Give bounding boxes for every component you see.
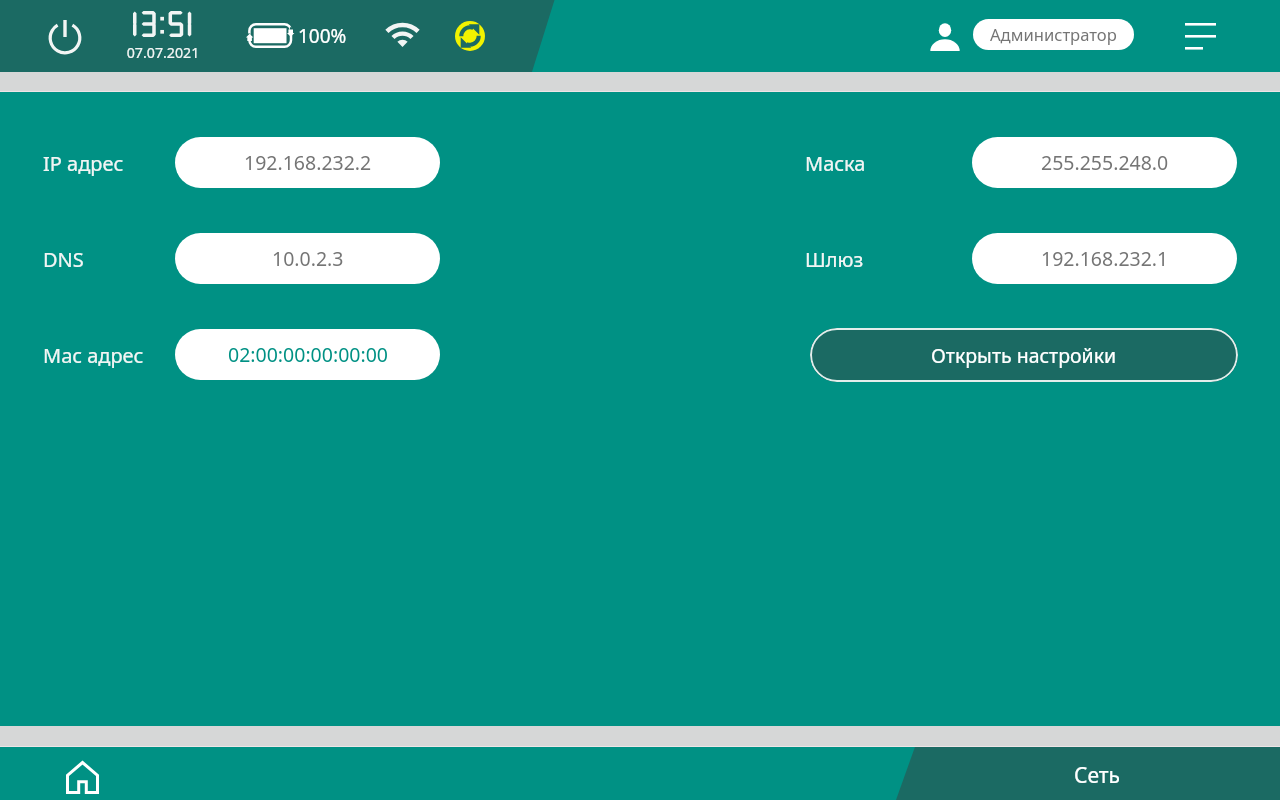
staticText: 10.0.2.3	[272, 245, 344, 272]
staticText: Шлюз	[805, 246, 864, 273]
staticText: 02:00:00:00:00:00	[228, 341, 388, 368]
button[interactable]: Account: Администратор	[924, 12, 1140, 60]
staticText: 192.168.232.2	[244, 149, 372, 176]
button[interactable]: 192.168.232.1	[972, 233, 1237, 284]
staticText: Mac адрес	[43, 342, 144, 369]
button[interactable]: Home	[54, 753, 111, 800]
staticText: 07.07.2021	[124, 43, 202, 62]
staticText: 100%	[298, 23, 347, 49]
button[interactable]: Сеть	[915, 747, 1280, 800]
staticText: Маска	[805, 150, 866, 177]
button[interactable]: Открыть настройки	[810, 328, 1238, 382]
button[interactable]: 255.255.248.0	[972, 137, 1237, 188]
staticText: Администратор	[990, 23, 1117, 46]
staticText: 255.255.248.0	[1041, 149, 1169, 176]
button[interactable]: Power	[40, 12, 90, 62]
button[interactable]: 02:00:00:00:00:00	[175, 329, 440, 380]
staticText: 192.168.232.1	[1041, 245, 1169, 272]
staticText: IP адрес	[43, 150, 124, 177]
button[interactable]: 10.0.2.3	[175, 233, 440, 284]
staticText: DNS	[43, 246, 84, 273]
button[interactable]: Menu	[1173, 12, 1219, 60]
staticText: Открыть настройки	[931, 342, 1117, 369]
button[interactable]: 192.168.232.2	[175, 137, 440, 188]
staticText: Сеть	[1074, 761, 1121, 790]
